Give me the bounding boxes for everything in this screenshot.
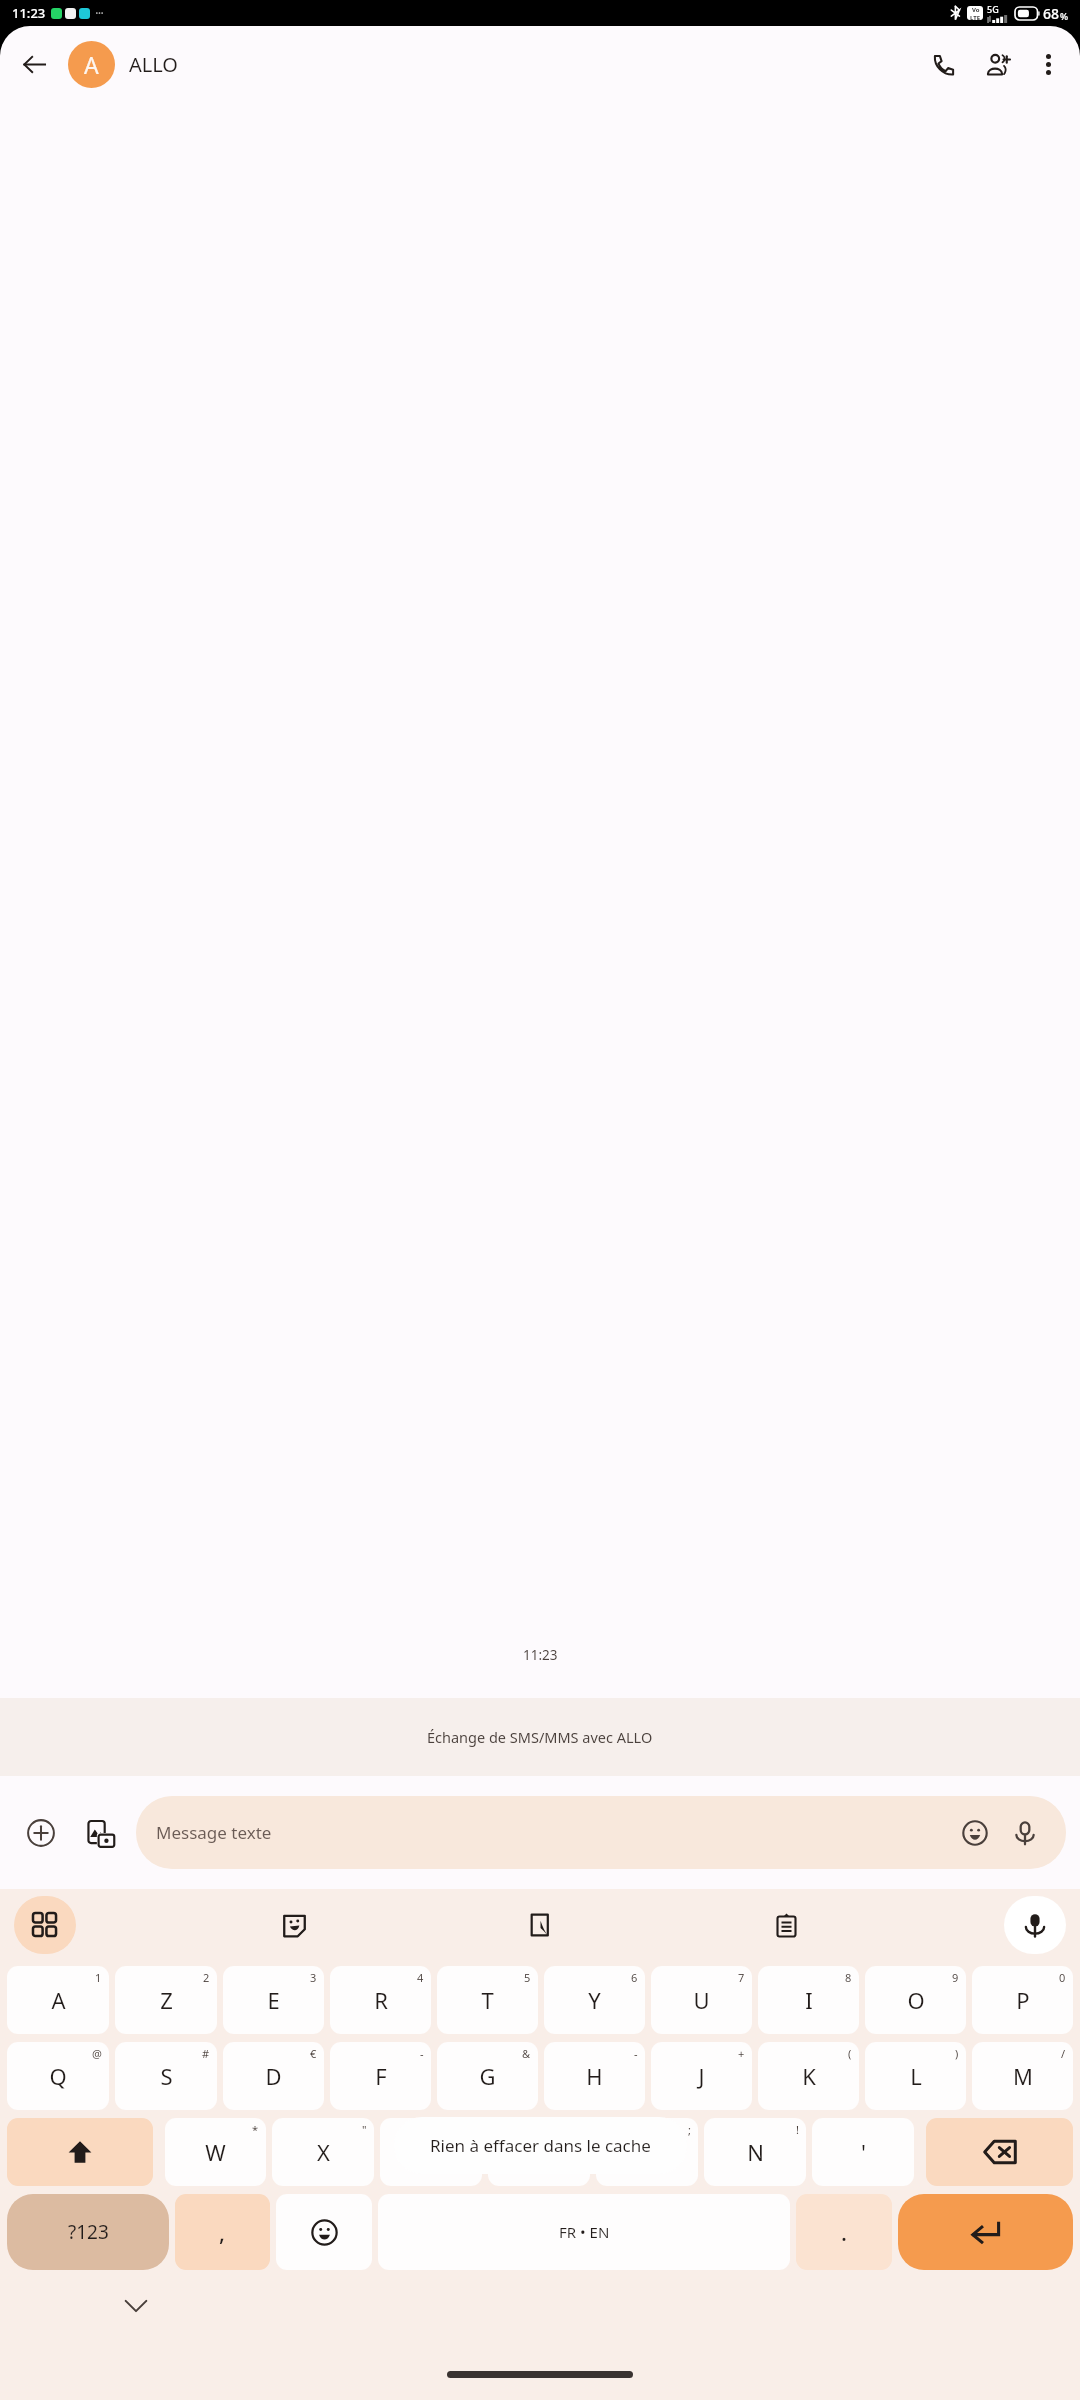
staticText: 9 [952,1970,959,1985]
button[interactable]: X [272,2118,374,2186]
button[interactable]: B [596,2118,698,2186]
staticText: 5 [524,1970,531,1985]
staticText: I [805,1985,813,2015]
staticText: 5G [987,3,999,15]
button[interactable]: ' [812,2118,914,2186]
staticText: 1 [95,1970,102,1985]
button[interactable]: Add contact [974,40,1022,88]
button[interactable]: Backspace [926,2118,1073,2186]
staticText: Y [588,1985,601,2015]
staticText: ( [848,2046,852,2061]
button[interactable]: Emoji [276,2194,372,2270]
staticText: M [1013,2061,1033,2091]
button[interactable]: A [7,1966,109,2034]
staticText: * [252,2122,259,2137]
button[interactable]: O [865,1966,966,2034]
button[interactable]: Y [544,1966,645,2034]
button[interactable]: G [437,2042,538,2110]
staticText: & [522,2046,531,2061]
button[interactable]: J [651,2042,752,2110]
button[interactable]: H [544,2042,645,2110]
staticText: 4 [417,1970,424,1985]
button[interactable]: Stickers [266,1897,322,1953]
staticText: - [420,2046,424,2061]
staticText: Vo [972,6,980,14]
button[interactable]: R [330,1966,431,2034]
button[interactable]: V [488,2118,590,2186]
staticText: 6 [631,1970,638,1985]
staticText: A [51,1985,66,2015]
staticText: H [586,2061,603,2091]
button[interactable]: F [330,2042,431,2110]
staticText: F [375,2061,387,2091]
staticText: T [481,1985,494,2015]
button[interactable]: A [68,41,115,88]
button[interactable]: E [223,1966,324,2034]
staticText: 11:23 [12,4,46,22]
staticText: Rien à effacer dans le cache [430,2134,651,2157]
staticText: X [317,2137,330,2167]
staticText: 68 [1043,4,1060,23]
staticText: € [310,2046,317,2061]
button[interactable]: Shift [7,2118,153,2186]
staticText: 11:23 [523,1646,558,1664]
button[interactable]: S [115,2042,217,2110]
staticText: R [374,1985,388,2015]
staticText: - [634,2046,638,2061]
button[interactable]: Z [115,1966,217,2034]
staticText: ' [861,2137,866,2167]
staticText: B [640,2137,655,2167]
button[interactable]: T [437,1966,538,2034]
staticText: C [424,2137,438,2167]
staticText: . [841,2217,847,2247]
button[interactable]: Add attachment [14,1806,68,1860]
button[interactable]: Emoji [954,1812,996,1854]
staticText: ) [955,2046,959,2061]
button[interactable]: I [758,1966,859,2034]
button[interactable]: D [223,2042,324,2110]
button[interactable]: Voice message [1004,1812,1046,1854]
staticText: ! [796,2122,799,2137]
button[interactable]: Enter [898,2194,1073,2270]
staticText: E [267,1985,280,2015]
button[interactable]: K [758,2042,859,2110]
button[interactable]: Voice input [1004,1896,1066,1954]
button[interactable]: Toolbar menu [14,1896,76,1954]
button[interactable]: L [865,2042,966,2110]
button[interactable]: Handwriting [512,1897,568,1953]
button[interactable]: Message texte [136,1796,1066,1869]
staticText: 0 [1059,1970,1066,1985]
button[interactable]: More options [1026,42,1070,86]
staticText: 2 [203,1970,210,1985]
button[interactable]: U [651,1966,752,2034]
staticText: 7 [738,1970,745,1985]
staticText: D [265,2061,282,2091]
staticText: P [1016,1985,1030,2015]
button[interactable]: N [704,2118,806,2186]
button[interactable]: . [796,2194,892,2270]
staticText: W [205,2137,226,2167]
button[interactable]: FR • EN [378,2194,790,2270]
button[interactable]: Gallery and camera [74,1806,128,1860]
button[interactable]: P [972,1966,1073,2034]
button[interactable]: C [380,2118,482,2186]
staticText: , [219,2217,226,2247]
button[interactable]: Clipboard [758,1897,814,1953]
button[interactable]: Hide keyboard [110,2280,162,2332]
staticText: ?123 [68,2219,109,2245]
staticText: # [202,2046,210,2061]
button[interactable]: Back [10,40,58,88]
button[interactable]: Call [920,40,968,88]
staticText: Échange de SMS/MMS avec ALLO [427,1727,653,1747]
button[interactable]: ?123 [7,2194,169,2270]
button[interactable]: , [175,2194,270,2270]
staticText: O [907,1985,925,2015]
staticText: % [1060,10,1069,23]
staticText: LTE [970,14,981,20]
button[interactable]: M [972,2042,1073,2110]
staticText: J [698,2061,705,2091]
button[interactable]: W [165,2118,266,2186]
button[interactable]: Q [7,2042,109,2110]
